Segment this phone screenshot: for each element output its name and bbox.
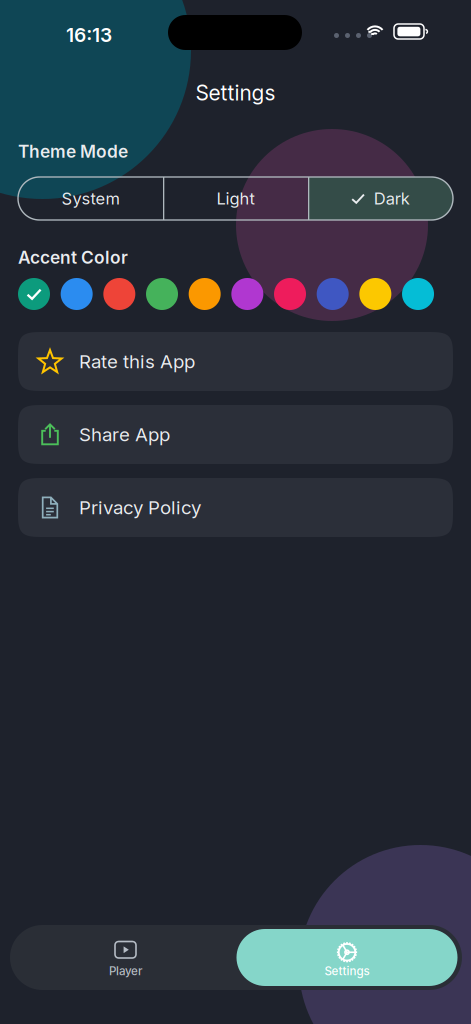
button[interactable]: Accent colour option 6	[231, 278, 263, 310]
staticText: Settings	[324, 964, 369, 978]
staticText: Privacy Policy	[79, 496, 201, 519]
button[interactable]: System	[18, 177, 163, 220]
button[interactable]: Dark	[308, 177, 453, 220]
button[interactable]: Accent colour option 3	[103, 278, 135, 310]
button[interactable]: Accent colour option 2	[61, 278, 93, 310]
button[interactable]: Accent colour option 9	[359, 278, 391, 310]
button[interactable]: Rate this App	[18, 332, 453, 391]
staticText: Accent Color	[18, 247, 128, 268]
staticText: Theme Mode	[18, 141, 128, 162]
button[interactable]: Settings	[236, 929, 457, 986]
button[interactable]: Accent colour option 5	[189, 278, 221, 310]
button[interactable]: Accent colour option 1	[18, 278, 50, 310]
staticText: Share App	[79, 423, 170, 446]
staticText: Player	[109, 964, 142, 978]
button[interactable]: Player	[14, 929, 236, 986]
button[interactable]: Privacy Policy	[18, 478, 453, 537]
staticText: Dark	[374, 188, 410, 208]
staticText: 16:13	[66, 23, 112, 47]
staticText: Light	[216, 188, 254, 208]
button[interactable]: Accent colour option 10	[402, 278, 434, 310]
button[interactable]: Share App	[18, 405, 453, 464]
staticText: Rate this App	[79, 350, 195, 373]
button[interactable]: Accent colour option 7	[274, 278, 306, 310]
button[interactable]: Accent colour option 4	[146, 278, 178, 310]
button[interactable]: Light	[163, 177, 308, 220]
staticText: Settings	[195, 80, 275, 106]
staticText: System	[61, 188, 119, 208]
button[interactable]: Accent colour option 8	[317, 278, 349, 310]
